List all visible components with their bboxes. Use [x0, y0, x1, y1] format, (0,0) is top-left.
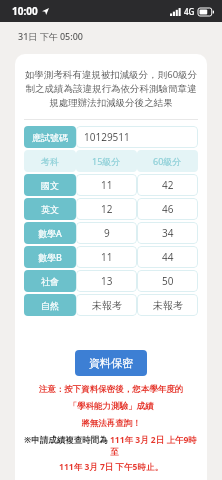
staticText: 111年 3月 2日 上午9時至 [110, 434, 198, 457]
staticText: 英文 [41, 204, 59, 215]
staticText: 「學科能力測驗」成績 [24, 401, 198, 412]
staticText: 國文 [41, 180, 59, 191]
staticText: 考科 [41, 156, 59, 167]
staticText: 數學A [38, 227, 62, 239]
staticText: 10:00 [12, 4, 38, 18]
staticText: 34 [162, 226, 174, 240]
staticText: 如學測考科有違規被扣減級分，則60級分制之成績為該違規行為依分科測驗簡章違規處理… [24, 68, 198, 109]
staticText: ※申請成績複查時間為 [24, 434, 110, 446]
staticText: 111年 3月 7日 下午5時止。 [24, 461, 198, 473]
staticText: 自然 [41, 300, 59, 311]
staticText: 社會 [41, 276, 59, 287]
button[interactable]: 資料保密 [75, 350, 147, 376]
staticText: 未報考 [92, 299, 122, 312]
staticText: 44 [162, 250, 174, 264]
staticText: 10129511 [84, 130, 130, 144]
staticText: 46 [162, 202, 174, 216]
staticText: 注意：按下資料保密後，您本學年度的 [24, 384, 198, 395]
staticText: 31日 下午 05:00 [18, 30, 84, 42]
staticText: 13 [101, 274, 113, 288]
staticText: 42 [162, 178, 174, 192]
staticText: 未報考 [153, 299, 183, 312]
staticText: 4G [184, 6, 195, 17]
staticText: 12 [101, 202, 113, 216]
staticText: 11 [101, 250, 113, 264]
staticText: 將無法再查詢！ [24, 418, 198, 429]
staticText: 數學B [38, 251, 62, 263]
staticText: 應試號碼 [32, 132, 68, 143]
staticText: 50 [162, 274, 174, 288]
staticText: 11 [101, 178, 113, 192]
staticText: 9 [104, 226, 110, 240]
staticText: 資料保密 [89, 356, 133, 370]
staticText: 15級分 [92, 155, 121, 167]
staticText: 60級分 [153, 155, 182, 167]
